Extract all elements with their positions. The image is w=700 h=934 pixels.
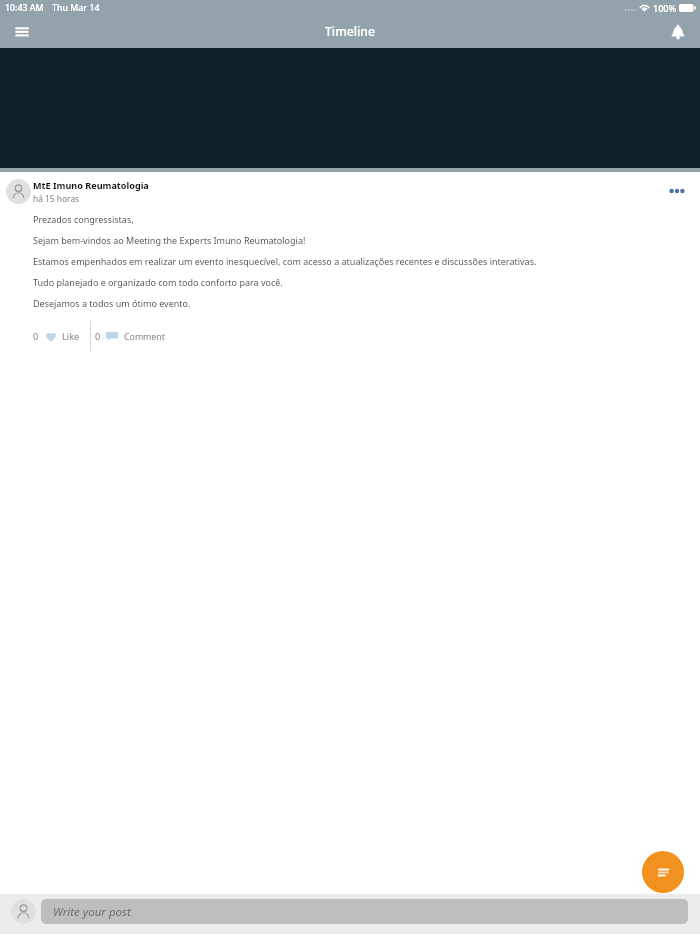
button[interactable]: Open navigation menu bbox=[9, 19, 35, 45]
staticText: há 15 horas bbox=[33, 193, 80, 204]
button[interactable]: Write your post bbox=[41, 899, 688, 924]
staticText: Tudo planejado e organizado com todo con… bbox=[33, 276, 283, 288]
staticText: 10:43 AM bbox=[5, 2, 44, 14]
staticText: 0 bbox=[95, 330, 101, 343]
staticText: Estamos empenhados em realizar um evento… bbox=[33, 255, 537, 267]
button[interactable]: More options bbox=[664, 178, 690, 204]
staticText: 100% bbox=[653, 2, 677, 14]
staticText: Sejam bem-vindos ao Meeting the Experts … bbox=[33, 234, 306, 246]
button[interactable]: 0 bbox=[95, 321, 165, 352]
button[interactable]: Notifications bbox=[665, 19, 691, 45]
staticText: Timeline bbox=[325, 23, 375, 40]
staticText: Like bbox=[62, 330, 80, 343]
staticText: Thu Mar 14 bbox=[52, 2, 100, 14]
button[interactable]: New post bbox=[642, 851, 684, 893]
button[interactable]: 0 bbox=[33, 321, 80, 352]
staticText: MtE Imuno Reumatologia bbox=[33, 179, 149, 191]
staticText: Prezados congressistas, bbox=[33, 213, 134, 225]
staticText: Comment bbox=[124, 331, 165, 343]
staticText: Write your post bbox=[53, 904, 131, 920]
staticText: 0 bbox=[33, 330, 39, 343]
staticText: Desejamos a todos um ótimo evento. bbox=[33, 297, 191, 309]
